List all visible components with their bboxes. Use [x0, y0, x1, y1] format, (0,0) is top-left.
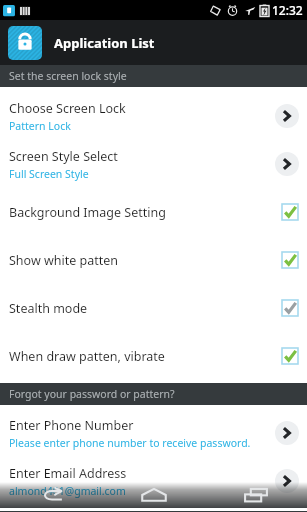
staticText: Full Screen Style — [9, 167, 89, 181]
button[interactable]: Home — [103, 482, 205, 508]
button[interactable]: App icon — [8, 26, 42, 60]
staticText: Background Image Setting — [9, 204, 282, 221]
button[interactable]: Choose Screen Lock — [0, 92, 307, 140]
button[interactable]: Stealth mode — [0, 284, 307, 332]
staticText: Screen Style Select — [9, 148, 118, 165]
button[interactable]: Enter Email Address — [0, 457, 307, 505]
button[interactable]: Back — [0, 482, 103, 508]
button[interactable]: When draw patten, vibrate — [0, 332, 307, 380]
staticText: Enter Email Address — [9, 465, 127, 482]
other: Checked — [282, 252, 298, 268]
staticText: Enter Phone Number — [9, 417, 134, 434]
button[interactable]: Enter Phone Number — [0, 409, 307, 457]
button[interactable]: Recent apps — [205, 482, 307, 508]
other: App title bar — [0, 20, 307, 65]
staticText: Please enter phone number to receive pas… — [9, 436, 251, 450]
button[interactable]: Show white patten — [0, 236, 307, 284]
button[interactable]: Screen Style Select — [0, 140, 307, 188]
staticText: Stealth mode — [9, 300, 282, 317]
other: Checked — [282, 204, 298, 220]
staticText: 12:32 — [272, 2, 303, 18]
other: Checked disabled — [282, 300, 298, 316]
staticText: Set the screen lock style — [9, 69, 127, 83]
staticText: Forgot your password or pattern? — [9, 387, 175, 401]
staticText: Application List — [54, 34, 155, 52]
staticText: Pattern Lock — [9, 119, 71, 133]
staticText: When draw patten, vibrate — [9, 348, 282, 365]
staticText: Choose Screen Lock — [9, 100, 126, 117]
staticText: almond401@gmail.com — [9, 484, 126, 498]
other: Checked — [282, 348, 298, 364]
button[interactable]: Background Image Setting — [0, 188, 307, 236]
staticText: Show white patten — [9, 252, 282, 269]
